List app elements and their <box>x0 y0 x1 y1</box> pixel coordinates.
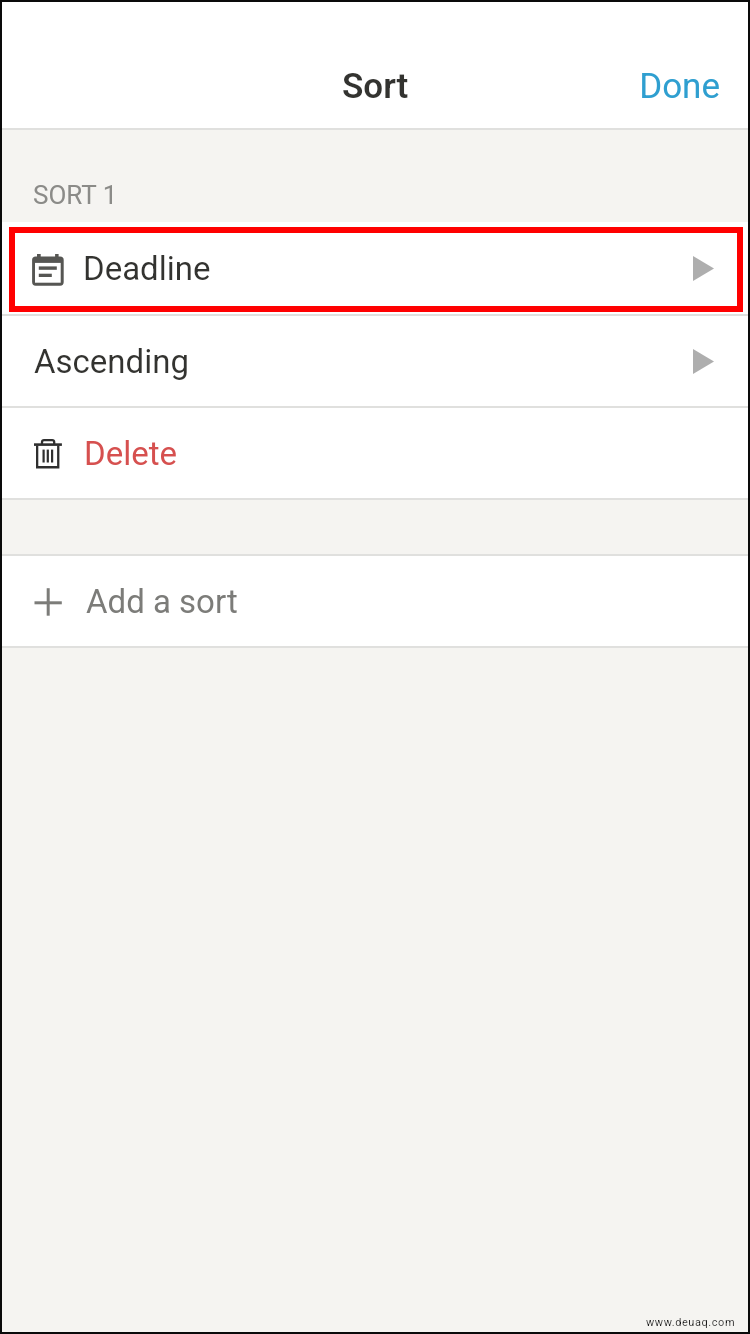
staticText: Add a sort <box>86 582 238 621</box>
button[interactable]: Done <box>624 43 748 115</box>
button[interactable]: Deadline <box>2 222 748 314</box>
button[interactable]: Ascending <box>2 316 748 406</box>
button[interactable]: Add a sort <box>2 556 748 646</box>
staticText: SORT 1 <box>33 180 118 210</box>
staticText: Deadline <box>83 249 211 288</box>
staticText: www.deuaq.com <box>646 1316 736 1329</box>
staticText: Done <box>639 66 720 107</box>
staticText: Delete <box>84 434 177 473</box>
staticText: Ascending <box>34 342 189 381</box>
button[interactable]: Delete <box>2 408 748 498</box>
staticText: Sort <box>342 66 409 107</box>
